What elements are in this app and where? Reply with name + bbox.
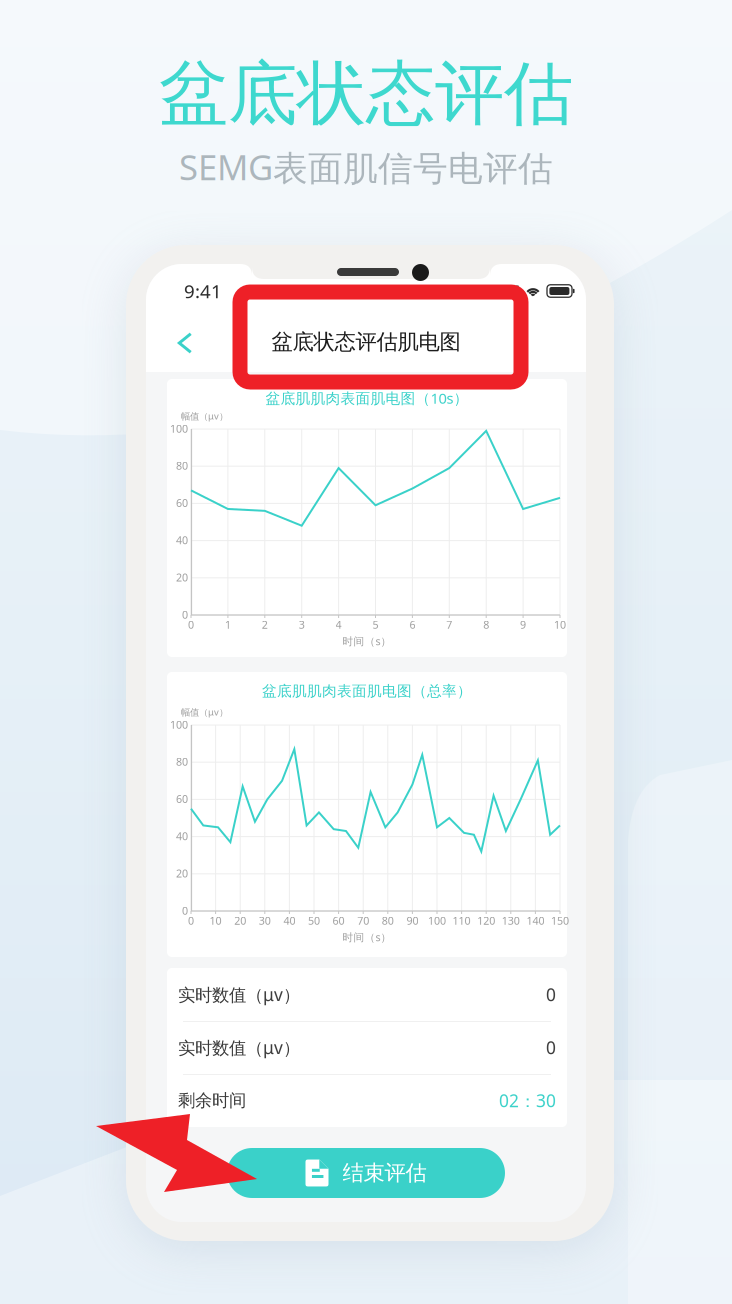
staticText: 20 bbox=[176, 570, 188, 584]
staticText: 90 bbox=[406, 913, 418, 928]
staticText: 40 bbox=[176, 533, 188, 547]
staticText: 8 bbox=[483, 617, 489, 632]
staticText: 剩余时间 bbox=[178, 1090, 246, 1111]
button[interactable]: 实时数值（μv） bbox=[167, 968, 567, 1021]
staticText: 10 bbox=[554, 617, 566, 632]
staticText: 100 bbox=[170, 421, 188, 436]
staticText: 70 bbox=[357, 913, 369, 928]
staticText: 60 bbox=[333, 913, 345, 928]
staticText: 0 bbox=[546, 983, 556, 1006]
staticText: 100 bbox=[170, 717, 188, 732]
staticText: 9:41 bbox=[184, 279, 222, 303]
staticText: 幅值（μv） bbox=[181, 410, 228, 422]
staticText: 40 bbox=[283, 913, 295, 928]
staticText: 0 bbox=[182, 903, 188, 918]
staticText: 120 bbox=[477, 913, 495, 928]
staticText: 50 bbox=[308, 913, 320, 928]
staticText: 100 bbox=[428, 913, 446, 928]
staticText: 盆底肌肌肉表面肌电图（10s） bbox=[265, 388, 468, 408]
staticText: 盆底状态评估 bbox=[159, 51, 573, 137]
staticText: 1 bbox=[225, 617, 231, 632]
staticText: 80 bbox=[176, 755, 188, 769]
staticText: 7 bbox=[446, 617, 452, 632]
staticText: 结束评估 bbox=[342, 1160, 426, 1186]
staticText: 02：30 bbox=[499, 1089, 556, 1112]
staticText: 5 bbox=[372, 617, 378, 632]
staticText: 10 bbox=[210, 913, 222, 928]
staticText: 0 bbox=[546, 1036, 556, 1059]
staticText: 幅值（μv） bbox=[181, 706, 228, 718]
staticText: 140 bbox=[526, 913, 544, 928]
staticText: 80 bbox=[176, 459, 188, 473]
staticText: 130 bbox=[502, 913, 520, 928]
staticText: 盆底状态评估肌电图 bbox=[271, 329, 460, 355]
staticText: 3 bbox=[299, 617, 305, 632]
staticText: 实时数值（μv） bbox=[178, 983, 300, 1006]
staticText: 2 bbox=[262, 617, 268, 632]
staticText: 80 bbox=[382, 913, 394, 928]
staticText: SEMG表面肌信号电评估 bbox=[179, 144, 553, 190]
staticText: 60 bbox=[176, 792, 188, 806]
button[interactable]: 剩余时间 bbox=[167, 1074, 567, 1127]
staticText: 0 bbox=[182, 607, 188, 622]
staticText: 60 bbox=[176, 496, 188, 510]
staticText: 40 bbox=[176, 829, 188, 843]
staticText: 盆底肌肌肉表面肌电图（总率） bbox=[262, 682, 472, 700]
staticText: 0 bbox=[188, 913, 194, 928]
staticText: 30 bbox=[259, 913, 271, 928]
staticText: 20 bbox=[234, 913, 246, 928]
staticText: 4 bbox=[336, 617, 342, 632]
staticText: 时间（s） bbox=[342, 930, 391, 944]
staticText: 9 bbox=[520, 617, 526, 632]
staticText: 实时数值（μv） bbox=[178, 1036, 300, 1059]
staticText: 0 bbox=[188, 617, 194, 632]
staticText: 20 bbox=[176, 866, 188, 880]
button[interactable]: Back bbox=[162, 320, 208, 366]
button[interactable]: 结束评估 bbox=[227, 1148, 505, 1198]
staticText: 时间（s） bbox=[342, 634, 391, 648]
button[interactable]: 实时数值（μv） bbox=[167, 1021, 567, 1074]
staticText: 6 bbox=[409, 617, 415, 632]
staticText: 110 bbox=[453, 913, 471, 928]
staticText: 150 bbox=[551, 913, 569, 928]
